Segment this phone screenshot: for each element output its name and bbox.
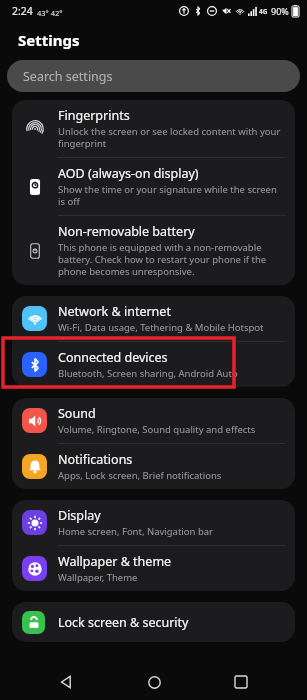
staticText: Home screen, Font, Navigation bar <box>58 525 214 538</box>
staticText: Wi-Fi, Data usage, Tethering & Mobile Ho… <box>58 321 264 334</box>
staticText: Lock screen & security <box>58 614 189 631</box>
staticText: Settings <box>18 30 80 50</box>
button[interactable]: Sound <box>12 398 295 443</box>
button[interactable]: AOD (always-on display) <box>12 158 295 215</box>
staticText: This phone is equipped with a non-remova… <box>58 241 285 278</box>
staticText: Connected devices <box>58 349 168 366</box>
button[interactable]: Display <box>12 500 295 545</box>
staticText: Volume, Ringtone, Sound quality and effe… <box>58 423 256 436</box>
staticText: Show the time or your signature while th… <box>58 183 285 208</box>
button[interactable]: Search settings <box>7 60 300 92</box>
staticText: Unlock the screen or see locked content … <box>58 125 285 150</box>
button[interactable]: Notifications <box>12 444 295 489</box>
button[interactable]: Network & internet <box>12 296 295 341</box>
staticText: 2:24 <box>12 4 33 18</box>
button[interactable]: Connected devices <box>12 342 295 387</box>
staticText: Sound <box>58 405 96 422</box>
staticText: Bluetooth, Screen sharing, Android Auto <box>58 367 238 380</box>
button[interactable]: Wallpaper & theme <box>12 546 295 591</box>
button[interactable]: Home <box>133 664 175 700</box>
button[interactable]: Lock screen & security <box>12 602 295 642</box>
staticText: Notifications <box>58 451 133 468</box>
staticText: Network & internet <box>58 303 171 320</box>
staticText: Wallpaper & theme <box>58 553 172 570</box>
staticText: Fingerprints <box>58 107 130 124</box>
staticText: 43° 42° <box>37 8 63 18</box>
staticText: Apps, Lock screen, Brief notifications <box>58 469 222 482</box>
button[interactable]: Recent apps <box>220 664 262 700</box>
staticText: 90% <box>271 5 289 17</box>
button[interactable]: Non-removable battery <box>12 216 295 285</box>
staticText: Non-removable battery <box>58 223 195 240</box>
button[interactable]: Fingerprints <box>12 100 295 157</box>
button[interactable]: Back <box>45 664 87 700</box>
staticText: Search settings <box>23 68 113 85</box>
staticText: Wallpaper, Theme <box>58 571 138 584</box>
staticText: Display <box>58 507 101 524</box>
staticText: AOD (always-on display) <box>58 165 199 182</box>
staticText: 4G <box>259 7 268 16</box>
